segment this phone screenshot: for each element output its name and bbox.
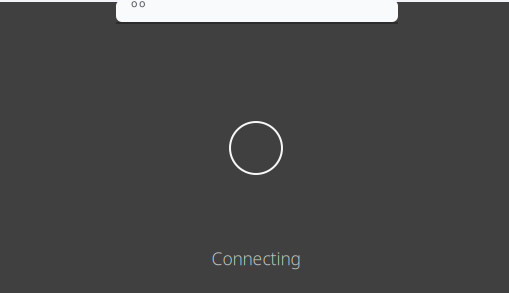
button[interactable]: Cancel connecting: [0, 0, 509, 293]
staticText: Connecting: [211, 247, 300, 270]
staticText: o: [139, 0, 145, 10]
staticText: o: [131, 0, 137, 10]
